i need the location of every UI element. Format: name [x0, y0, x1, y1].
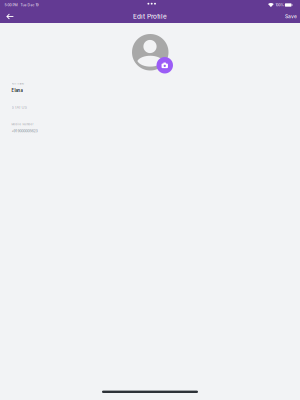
- staticText: 100%: [275, 3, 283, 7]
- button[interactable]: Full name: [11, 82, 288, 93]
- button[interactable]: STATUS: [11, 105, 288, 110]
- staticText: STATUS: [11, 105, 27, 110]
- staticText: Elana: [11, 88, 22, 93]
- staticText: 5:00 PM: [4, 3, 17, 7]
- button[interactable]: Save: [285, 10, 297, 23]
- staticText: Edit Profile: [133, 13, 167, 20]
- staticText: Save: [285, 13, 297, 19]
- button[interactable]: Back: [6, 10, 19, 23]
- staticText: Tue Dec 19: [20, 3, 38, 7]
- staticText: +919000005623: [11, 129, 37, 133]
- staticText: Mobile Number: [11, 123, 33, 126]
- staticText: Full name: [11, 82, 24, 85]
- button[interactable]: Mobile Number: [11, 123, 288, 133]
- button[interactable]: Change profile photo: [132, 34, 173, 73]
